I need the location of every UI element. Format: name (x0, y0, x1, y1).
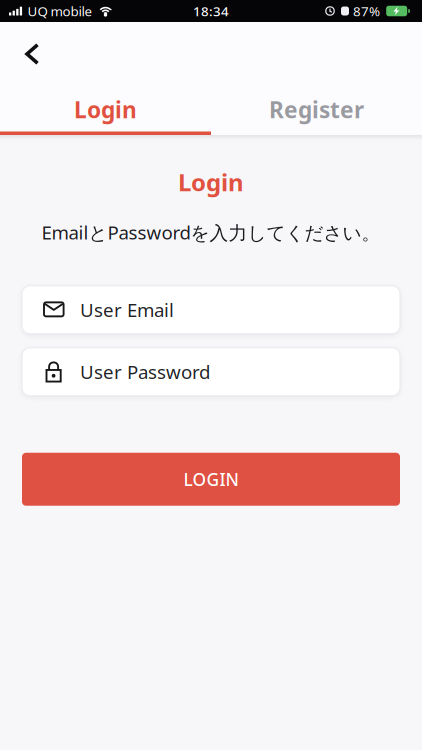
staticText: Login (178, 166, 244, 198)
staticText: User Email (80, 297, 174, 322)
staticText: 18:34 (193, 2, 229, 20)
button[interactable]: Register (211, 92, 422, 126)
staticText: 87% (353, 2, 380, 20)
button[interactable]: Login (0, 92, 211, 126)
staticText: UQ mobile (27, 2, 92, 20)
button[interactable]: User Email (22, 286, 400, 334)
staticText: Register (269, 94, 364, 124)
staticText: LOGIN (183, 468, 238, 491)
button[interactable]: Back (0, 22, 39, 65)
staticText: Login (74, 94, 137, 124)
staticText: EmailとPasswordを入力してください。 (41, 220, 380, 245)
staticText: User Password (80, 359, 210, 384)
button[interactable]: User Password (22, 348, 400, 396)
button[interactable]: LOGIN (22, 453, 400, 506)
